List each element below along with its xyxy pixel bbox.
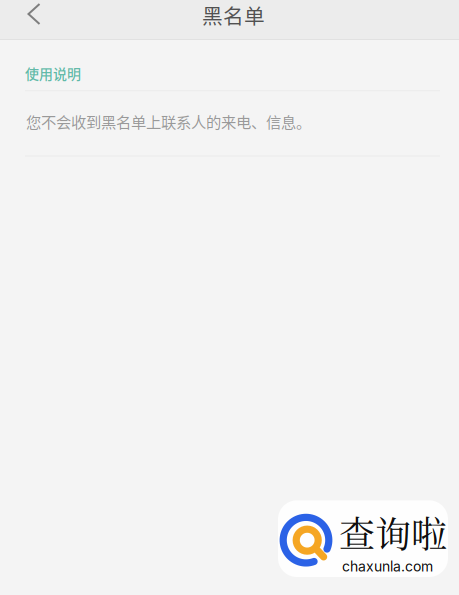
staticText: 您不会收到黑名单上联系人的来电、信息。 xyxy=(26,110,311,132)
staticText: 黑名单 xyxy=(202,0,265,30)
staticText: 使用说明 xyxy=(25,63,81,83)
staticText: chaxunla.com xyxy=(342,558,433,575)
button[interactable]: Back xyxy=(0,0,68,28)
staticText: 查询啦 xyxy=(339,506,447,558)
